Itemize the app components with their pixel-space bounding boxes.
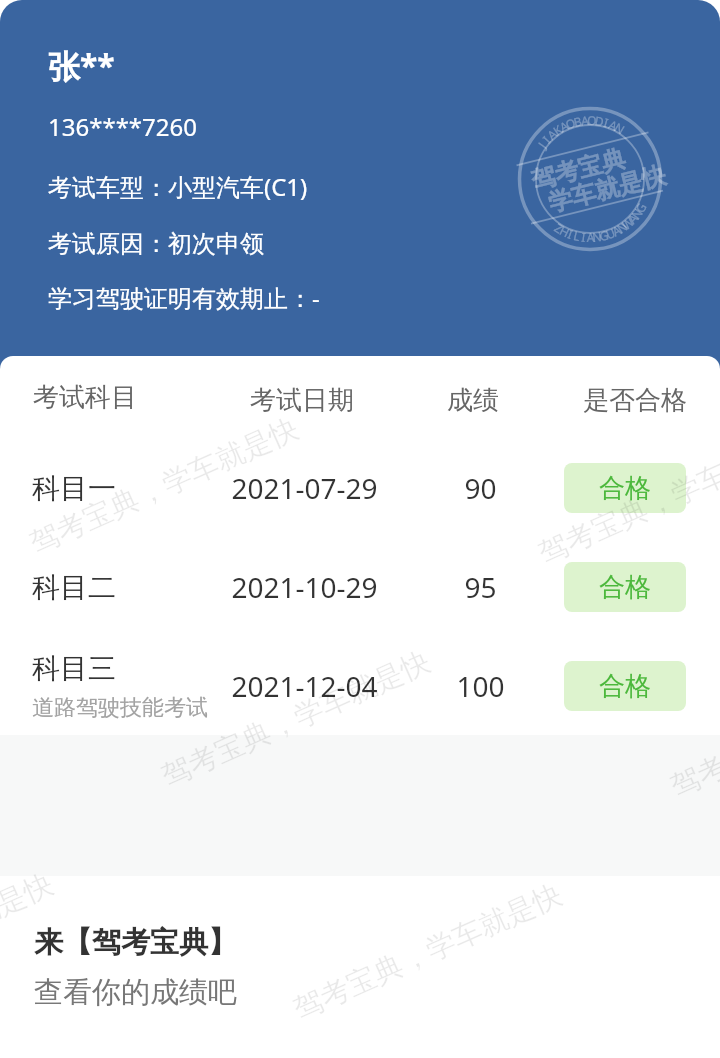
staticText: 100	[456, 667, 505, 705]
staticText: 科目一	[32, 471, 116, 506]
staticText: 考试科目	[33, 381, 137, 414]
button[interactable]: 科目二	[0, 538, 720, 636]
staticText: 来【驾考宝典】	[34, 924, 237, 961]
button[interactable]: 科目一	[0, 439, 720, 537]
staticText: 合格	[599, 670, 651, 703]
other: Official seal	[517, 106, 663, 252]
staticText: 张**	[48, 44, 115, 88]
staticText: 是否合格	[583, 384, 687, 417]
staticText: 2021-07-29	[231, 469, 378, 507]
staticText: 95	[464, 568, 497, 606]
button[interactable]: 科目三	[0, 637, 720, 735]
button[interactable]: 来【驾考宝典】	[0, 876, 720, 1058]
staticText: 查看你的成绩吧	[34, 974, 237, 1011]
button[interactable]: 合格	[564, 463, 686, 513]
staticText: 90	[464, 469, 497, 507]
staticText: 合格	[599, 571, 651, 604]
staticText: 学习驾驶证明有效期止：-	[48, 281, 320, 314]
staticText: 考试日期	[250, 384, 354, 417]
staticText: 道路驾驶技能考试	[32, 694, 208, 722]
staticText: 2021-12-04	[231, 667, 378, 705]
staticText: 136****7260	[48, 110, 197, 143]
staticText: 2021-10-29	[231, 568, 378, 606]
staticText: 合格	[599, 472, 651, 505]
staticText: 科目三	[32, 651, 116, 686]
staticText: 考试原因：初次申领	[48, 229, 264, 259]
button[interactable]: 合格	[564, 562, 686, 612]
button[interactable]: 合格	[564, 661, 686, 711]
staticText: 考试车型：小型汽车(C1)	[48, 170, 308, 203]
staticText: 成绩	[447, 384, 499, 417]
staticText: 科目二	[32, 570, 116, 605]
